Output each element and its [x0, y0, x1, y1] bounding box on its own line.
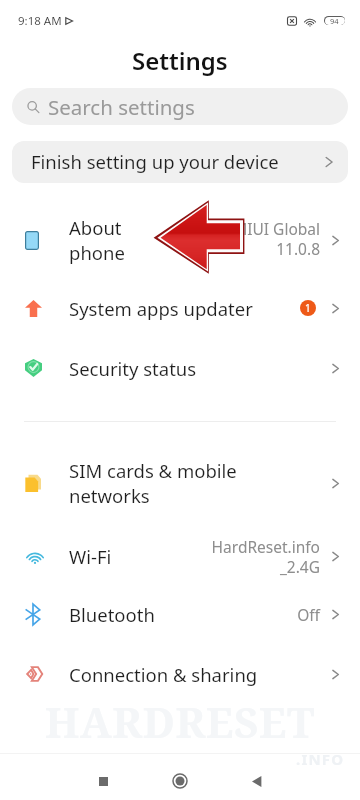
button[interactable]: Search settings	[12, 88, 348, 125]
staticText: 94	[330, 16, 339, 25]
staticText: Wi-Fi	[69, 544, 269, 569]
other: Wi-Fi	[304, 17, 316, 27]
button[interactable]: Home	[162, 763, 198, 799]
staticText: System apps updater	[69, 296, 269, 321]
staticText: 1	[305, 301, 311, 315]
staticText: Off	[297, 604, 320, 625]
button[interactable]: Wi-Fi	[0, 532, 360, 580]
staticText: Bluetooth	[69, 602, 269, 627]
staticText: 9:18 AM	[18, 13, 62, 29]
staticText: .INFO	[296, 749, 345, 769]
staticText: Connection & sharing	[69, 662, 269, 687]
button[interactable]: System apps updater	[0, 284, 360, 332]
staticText: Finish setting up your device	[31, 149, 279, 174]
button[interactable]: Recents	[85, 763, 121, 799]
staticText: Search settings	[48, 93, 195, 121]
staticText: HardReset.info _2.4G	[211, 536, 320, 577]
button[interactable]: Connection & sharing	[0, 650, 360, 698]
button[interactable]: Security status	[0, 344, 360, 392]
staticText: Settings	[132, 44, 228, 76]
button[interactable]: Finish setting up your device	[12, 141, 348, 183]
staticText: Security status	[69, 356, 269, 381]
button[interactable]: About phone	[0, 208, 360, 272]
button[interactable]: SIM cards & mobile networks	[0, 451, 360, 515]
staticText: SIM cards & mobile networks	[69, 458, 264, 509]
staticText: About phone	[69, 215, 135, 266]
other: No SIM	[287, 16, 297, 26]
button[interactable]: Bluetooth	[0, 590, 360, 638]
other: Battery 94 percent	[324, 16, 345, 25]
staticText: MIUI Global 11.0.8	[233, 218, 320, 259]
staticText: HARDRESET	[45, 693, 316, 750]
button[interactable]: Back	[239, 763, 275, 799]
